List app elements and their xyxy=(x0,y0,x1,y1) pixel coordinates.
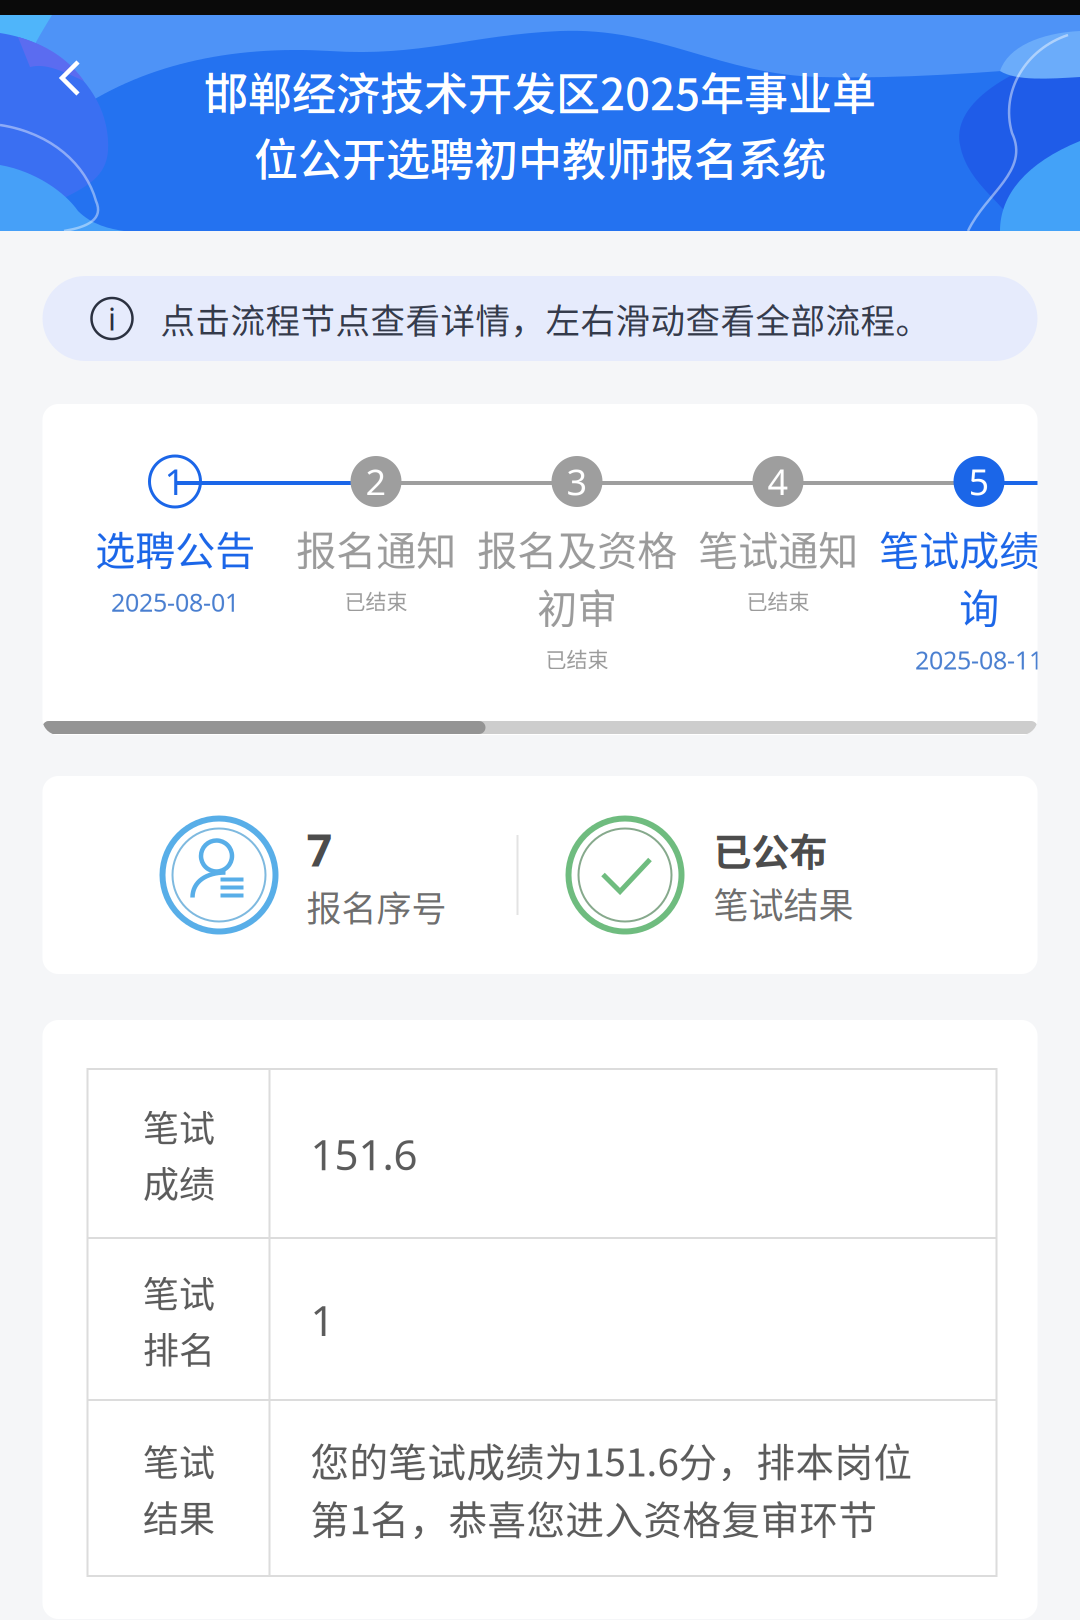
staticText: 4 xyxy=(767,457,788,506)
staticText: 笔试 xyxy=(143,1266,215,1318)
button[interactable]: 5 xyxy=(878,456,1079,706)
staticText: 报名通知 xyxy=(296,519,456,577)
button[interactable]: 返回 xyxy=(0,32,114,124)
button[interactable]: 1 xyxy=(74,456,275,706)
staticText: 点击流程节点查看详情，左右滑动查看全部流程。 xyxy=(160,293,930,343)
staticText: 排名 xyxy=(143,1322,215,1374)
staticText: 已结束 xyxy=(344,585,407,615)
staticText: 2025-08-11 xyxy=(915,643,1043,677)
staticText: 笔试通知 xyxy=(698,519,858,577)
staticText: 位公开选聘初中教师报名系统 xyxy=(254,125,826,189)
staticText: 笔试 xyxy=(143,1100,215,1152)
button[interactable]: 2 xyxy=(275,456,476,706)
button[interactable]: 7 xyxy=(42,776,516,974)
staticText: 1 xyxy=(164,457,185,506)
staticText: 1 xyxy=(310,1291,334,1349)
staticText: 您的笔试成绩为151.6分，排本岗位 xyxy=(310,1432,912,1487)
staticText: 已结束 xyxy=(746,585,809,615)
button[interactable]: 已公布 xyxy=(518,776,1037,974)
staticText: 第1名，恭喜您进入资格复审环节 xyxy=(310,1489,877,1545)
staticText: i xyxy=(108,297,116,340)
staticText: 7 xyxy=(306,818,332,880)
staticText: 笔试成绩查询 xyxy=(879,519,1079,635)
staticText: 成绩 xyxy=(143,1156,215,1208)
staticText: 报名及资格初审 xyxy=(477,519,677,635)
staticText: 已公布 xyxy=(713,822,827,877)
staticText: 邯郸经济技术开发区2025年事业单 xyxy=(204,59,876,123)
staticText: 笔试结果 xyxy=(713,878,853,928)
staticText: 报名序号 xyxy=(306,881,446,931)
button[interactable]: 4 xyxy=(677,456,878,706)
staticText: 笔试 xyxy=(143,1434,215,1486)
staticText: 5 xyxy=(968,457,989,506)
staticText: 选聘公告 xyxy=(95,519,255,577)
staticText: 结果 xyxy=(143,1490,215,1543)
staticText: 2 xyxy=(365,457,386,506)
staticText: 2025-08-01 xyxy=(111,585,239,619)
staticText: 3 xyxy=(566,457,587,506)
button[interactable]: 3 xyxy=(476,456,677,706)
staticText: 151.6 xyxy=(310,1125,417,1183)
staticText: 已结束 xyxy=(545,643,608,673)
